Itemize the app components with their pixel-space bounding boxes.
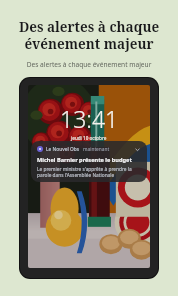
staticText: Michel Barnier présente le budget (37, 156, 132, 164)
staticText: Des alertes à chaque événement majeur (8, 60, 170, 69)
button[interactable]: Le Nouvel Obs (31, 141, 147, 182)
staticText: Le Nouvel Obs (46, 146, 80, 153)
button[interactable]: Développer la notification (133, 145, 141, 153)
staticText: Des alertes à chaque événement majeur (10, 18, 168, 53)
staticText: 13:41 (60, 103, 119, 134)
staticText: Le premier ministre s'apprête à prendre … (37, 166, 141, 178)
staticText: maintenant (83, 146, 110, 153)
staticText: jeudi 10 octobre (71, 135, 107, 141)
